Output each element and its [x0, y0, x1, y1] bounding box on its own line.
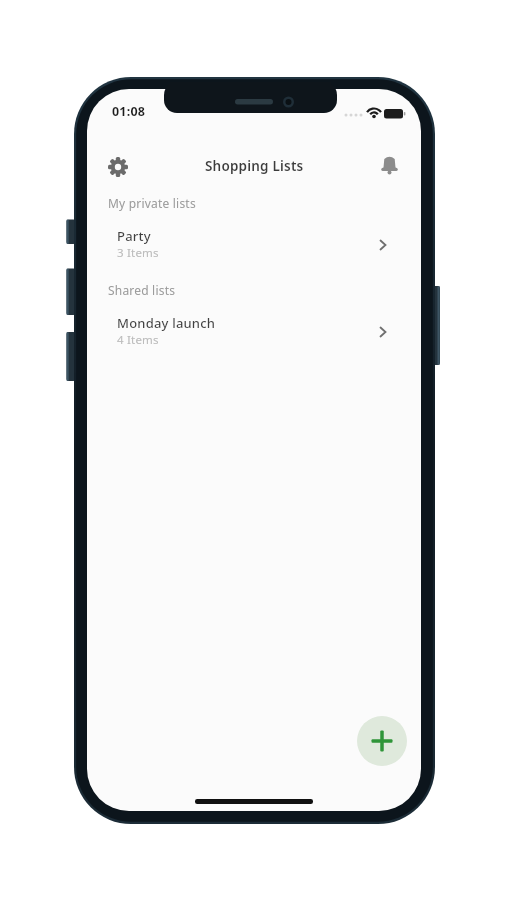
button[interactable]	[104, 153, 132, 181]
button[interactable]	[376, 153, 403, 180]
staticText: Monday launch	[117, 314, 216, 332]
staticText: 3 Items	[117, 245, 159, 261]
button[interactable]: Party	[99, 219, 409, 267]
staticText: 01:08	[112, 103, 146, 120]
staticText: My private lists	[108, 195, 196, 211]
button[interactable]: Monday launch	[99, 306, 409, 354]
button[interactable]	[357, 716, 407, 766]
staticText: Shopping Lists	[205, 157, 304, 175]
staticText: Party	[117, 227, 151, 245]
staticText: Shared lists	[108, 282, 176, 298]
staticText: 4 Items	[117, 332, 159, 348]
